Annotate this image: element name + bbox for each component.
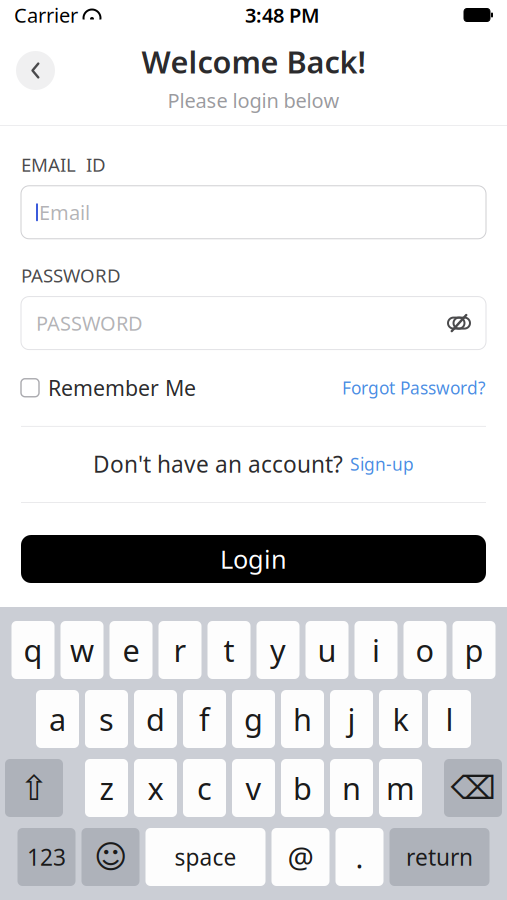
staticText: c — [197, 768, 212, 808]
staticText: y — [270, 630, 286, 670]
button[interactable]: x — [134, 759, 177, 817]
button[interactable]: j — [330, 690, 373, 748]
button[interactable]: m — [379, 759, 422, 817]
button[interactable]: v — [232, 759, 275, 817]
button[interactable]: f — [183, 690, 226, 748]
staticText: k — [392, 699, 408, 739]
button[interactable]: Login — [21, 535, 486, 583]
button[interactable]: w — [60, 621, 103, 679]
staticText: w — [70, 630, 94, 670]
staticText: ⇧ — [19, 768, 48, 808]
staticText: a — [49, 699, 66, 739]
button[interactable]: h — [281, 690, 324, 748]
button[interactable]: Sign-up — [350, 452, 414, 475]
button[interactable]: Emoji — [81, 828, 139, 886]
button[interactable]: u — [305, 621, 348, 679]
button[interactable]: Delete — [444, 759, 502, 817]
button[interactable]: l — [428, 690, 471, 748]
button[interactable]: a — [36, 690, 79, 748]
staticText: Please login below — [167, 87, 339, 114]
staticText: h — [293, 699, 312, 739]
staticText: PASSWORD — [21, 263, 121, 288]
staticText: g — [244, 699, 263, 739]
button[interactable]: d — [134, 690, 177, 748]
staticText: ☺ — [94, 839, 127, 875]
staticText: v — [245, 768, 261, 808]
button[interactable]: q — [11, 621, 54, 679]
staticText: t — [223, 630, 234, 670]
staticText: u — [317, 630, 336, 670]
button[interactable]: e — [109, 621, 152, 679]
staticText: Carrier — [14, 2, 78, 28]
staticText: x — [147, 768, 163, 808]
staticText: i — [372, 630, 380, 670]
button[interactable]: o — [403, 621, 446, 679]
button[interactable]: i — [354, 621, 397, 679]
button[interactable]: b — [281, 759, 324, 817]
button[interactable]: k — [379, 690, 422, 748]
staticText: Welcome Back! — [141, 41, 365, 82]
staticText: . — [355, 837, 363, 876]
staticText: n — [342, 768, 361, 808]
staticText: 3:48 PM — [245, 2, 320, 28]
button[interactable]: Shift — [5, 759, 63, 817]
button[interactable]: Remember Me — [21, 374, 196, 402]
staticText: e — [122, 630, 139, 670]
button[interactable]: y — [256, 621, 299, 679]
staticText: Email — [39, 199, 90, 226]
staticText: return — [406, 842, 473, 872]
button[interactable]: 123 — [17, 828, 75, 886]
staticText: j — [347, 699, 355, 739]
staticText: Don't have an account? — [93, 449, 343, 479]
staticText: p — [464, 630, 483, 670]
staticText: f — [199, 699, 210, 739]
button[interactable]: Back — [16, 51, 55, 90]
button[interactable]: return — [389, 828, 489, 886]
button[interactable]: n — [330, 759, 373, 817]
staticText: r — [173, 630, 186, 670]
staticText: Forgot Password? — [342, 376, 486, 399]
staticText: EMAIL ID — [21, 152, 106, 177]
staticText: PASSWORD — [36, 310, 143, 336]
staticText: s — [99, 699, 114, 739]
staticText: q — [23, 630, 42, 670]
staticText: o — [415, 630, 434, 670]
button[interactable]: . — [335, 828, 383, 886]
staticText: b — [293, 768, 312, 808]
staticText: Login — [220, 542, 287, 576]
staticText: d — [146, 699, 165, 739]
staticText: space — [174, 842, 236, 872]
staticText: Remember Me — [48, 374, 196, 402]
button[interactable]: @ — [271, 828, 329, 886]
button[interactable]: s — [85, 690, 128, 748]
staticText: ⌫ — [450, 770, 495, 806]
button[interactable]: c — [183, 759, 226, 817]
staticText: @ — [287, 837, 313, 876]
button[interactable]: t — [207, 621, 250, 679]
button[interactable]: p — [452, 621, 495, 679]
staticText: m — [386, 768, 415, 808]
staticText: 123 — [27, 842, 66, 872]
staticText: Sign-up — [350, 452, 414, 475]
button[interactable]: r — [158, 621, 201, 679]
button[interactable]: Forgot Password? — [342, 376, 486, 399]
staticText: l — [445, 699, 453, 739]
button[interactable]: space — [145, 828, 265, 886]
button[interactable]: z — [85, 759, 128, 817]
staticText: z — [99, 768, 113, 808]
button[interactable]: g — [232, 690, 275, 748]
